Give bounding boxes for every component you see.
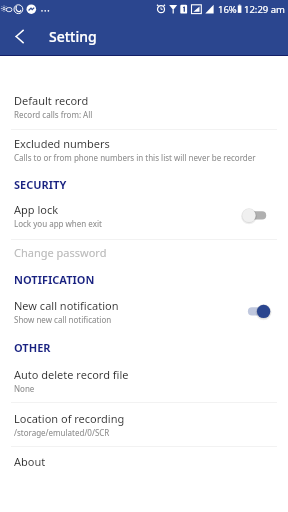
button[interactable]: Toggle <box>240 208 270 224</box>
button[interactable]: Change password <box>0 245 288 260</box>
staticText: 16% <box>218 3 237 16</box>
staticText: None <box>14 383 35 394</box>
staticText: OTHER <box>14 340 51 355</box>
staticText: Lock you app when exit <box>14 218 102 229</box>
button[interactable]: Excluded numbers <box>0 136 288 163</box>
staticText: Default record <box>14 93 89 108</box>
button[interactable]: App lock <box>0 202 288 229</box>
staticText: SECURITY <box>14 177 67 192</box>
button[interactable]: Location of recording <box>0 411 288 438</box>
staticText: Location of recording <box>14 411 125 426</box>
staticText: App lock <box>14 202 59 217</box>
button[interactable]: About <box>0 454 288 469</box>
staticText: Show new call notification <box>14 314 112 325</box>
staticText: New call notification <box>14 298 119 313</box>
staticText: /storage/emulated/0/SCR <box>14 427 110 438</box>
staticText: Change password <box>14 245 107 260</box>
staticText: About <box>14 454 46 469</box>
staticText: NOTIFICATION <box>14 272 95 287</box>
button[interactable]: Toggle <box>240 304 270 320</box>
staticText: Excluded numbers <box>14 136 110 151</box>
staticText: Calls to or from phone numbers in this l… <box>14 152 256 163</box>
staticText: Auto delete record file <box>14 367 129 382</box>
button[interactable]: Auto delete record file <box>0 367 288 394</box>
staticText: Setting <box>49 27 97 46</box>
button[interactable]: Back <box>0 18 40 56</box>
button[interactable]: New call notification <box>0 298 288 325</box>
button[interactable]: Default record <box>0 93 288 120</box>
staticText: Record calls from: All <box>14 109 93 120</box>
staticText: 12:29 am <box>244 3 285 16</box>
